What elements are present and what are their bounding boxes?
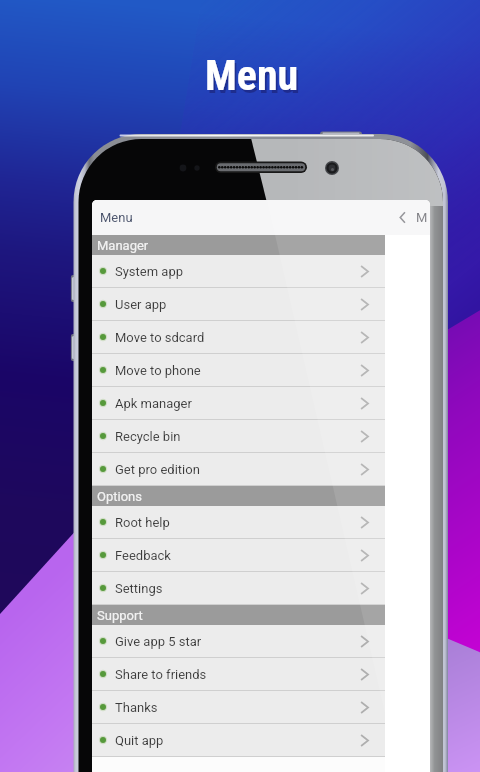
other: Back <box>399 211 406 224</box>
staticText: Get pro edition <box>115 462 200 477</box>
button[interactable]: Support <box>92 605 385 625</box>
button[interactable]: User app <box>92 288 385 320</box>
staticText: M <box>416 210 428 225</box>
button[interactable]: Quit app <box>92 724 385 756</box>
button[interactable]: Move to sdcard <box>92 321 385 353</box>
staticText: Thanks <box>115 700 158 715</box>
staticText: Share to friends <box>115 667 207 682</box>
staticText: Root help <box>115 515 170 530</box>
staticText: Give app 5 star <box>115 634 202 649</box>
button[interactable]: Move to phone <box>92 354 385 386</box>
button[interactable]: Share to friends <box>92 658 385 690</box>
button[interactable]: Settings <box>92 572 385 604</box>
button[interactable]: Options <box>92 486 385 506</box>
staticText: Menu <box>207 54 301 103</box>
staticText: Settings <box>115 581 163 596</box>
button[interactable]: Feedback <box>92 539 385 571</box>
button[interactable]: Give app 5 star <box>92 625 385 657</box>
staticText: Move to phone <box>115 363 201 378</box>
staticText: Support <box>97 608 143 623</box>
staticText: Menu <box>100 210 133 225</box>
staticText: Manager <box>97 238 149 253</box>
button[interactable]: Get pro edition <box>92 453 385 485</box>
staticText: Apk manager <box>115 396 192 411</box>
staticText: User app <box>115 297 167 312</box>
staticText: Feedback <box>115 548 171 563</box>
button[interactable]: System app <box>92 255 385 287</box>
staticText: Options <box>97 489 142 504</box>
button[interactable]: Thanks <box>92 691 385 723</box>
staticText: Move to sdcard <box>115 330 205 345</box>
staticText: Recycle bin <box>115 429 181 444</box>
staticText: System app <box>115 264 184 279</box>
button[interactable]: Apk manager <box>92 387 385 419</box>
staticText: Menu <box>205 51 299 100</box>
button[interactable]: Recycle bin <box>92 420 385 452</box>
button[interactable]: Manager <box>92 235 385 255</box>
button[interactable]: Root help <box>92 506 385 538</box>
staticText: Quit app <box>115 733 164 748</box>
